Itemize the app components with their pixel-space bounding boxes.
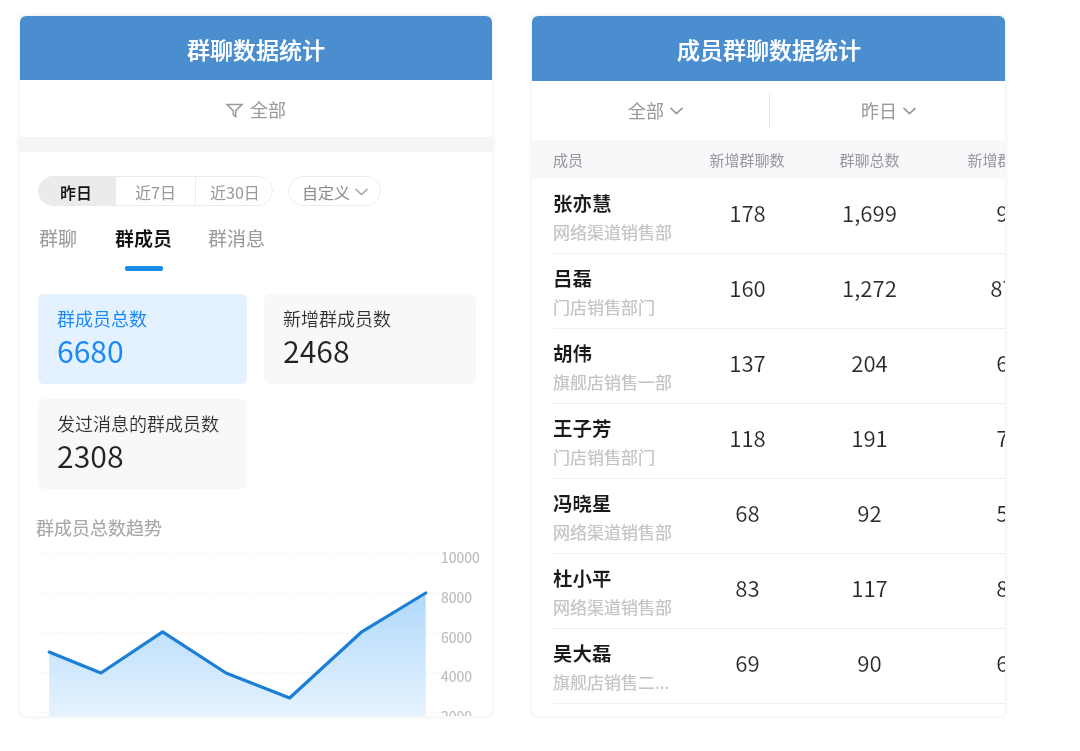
button[interactable]: 昨日 — [38, 176, 115, 206]
staticText: 160 — [729, 271, 766, 303]
button[interactable]: 吕磊 — [532, 254, 1005, 328]
staticText: 1,272 — [842, 271, 897, 303]
button[interactable]: 全部 — [20, 80, 492, 137]
staticText: 4000 — [441, 666, 473, 686]
staticText: 117 — [851, 571, 888, 603]
staticText: 870 — [990, 271, 1005, 303]
staticText: 发过消息的群成员数 — [57, 410, 219, 436]
staticText: 群消息 — [208, 224, 266, 252]
button[interactable]: 吴大磊 — [532, 629, 1005, 703]
staticText: 1,699 — [842, 196, 897, 228]
button[interactable]: 群聊 — [39, 224, 78, 271]
staticText: 旗舰店销售二... — [553, 669, 670, 694]
staticText: 204 — [851, 346, 888, 378]
staticText: 6000 — [441, 627, 473, 647]
staticText: 网络渠道销售部 — [553, 519, 672, 544]
staticText: 近7日 — [135, 180, 176, 203]
staticText: 191 — [851, 421, 888, 453]
staticText: 王子芳 — [553, 413, 612, 441]
staticText: 冯晓星 — [553, 488, 612, 516]
staticText: 成员 — [553, 149, 584, 171]
staticText: 69 — [735, 646, 760, 678]
staticText: 62 — [996, 346, 1005, 378]
button[interactable]: 群成员总数 — [38, 294, 247, 384]
staticText: 55 — [996, 496, 1005, 528]
staticText: 90 — [857, 646, 882, 678]
staticText: 群成员总数 — [57, 305, 147, 331]
staticText: 83 — [735, 571, 760, 603]
staticText: 群聊总数 — [839, 149, 900, 171]
button[interactable]: 全部 — [537, 81, 774, 140]
button[interactable]: 昨日 — [770, 81, 1005, 140]
staticText: 全部 — [250, 96, 286, 122]
staticText: 178 — [729, 196, 766, 228]
staticText: 83 — [996, 571, 1005, 603]
staticText: 118 — [729, 421, 766, 453]
staticText: 昨日 — [60, 180, 93, 203]
staticText: 137 — [729, 346, 766, 378]
staticText: 全部 — [628, 97, 664, 123]
staticText: 网络渠道销售部 — [553, 594, 672, 619]
staticText: 旗舰店销售一部 — [553, 369, 672, 394]
button[interactable]: 群消息 — [208, 224, 266, 271]
staticText: 74 — [996, 421, 1005, 453]
button[interactable]: 冯晓星 — [532, 479, 1005, 553]
staticText: 张亦慧 — [553, 188, 612, 216]
staticText: 网络渠道销售部 — [553, 219, 672, 244]
staticText: 吴大磊 — [553, 638, 612, 666]
staticText: 新增群聊数 — [709, 149, 785, 171]
button[interactable]: 杜小平 — [532, 554, 1005, 628]
staticText: 吕磊 — [553, 263, 593, 291]
staticText: 68 — [735, 496, 760, 528]
button[interactable]: 新增群成员数 — [264, 294, 476, 384]
staticText: 群聊数据统计 — [187, 32, 325, 65]
staticText: 群聊 — [39, 224, 78, 252]
staticText: 2000 — [441, 706, 473, 716]
button[interactable]: 胡伟 — [532, 329, 1005, 403]
staticText: 95 — [996, 196, 1005, 228]
button[interactable]: 发过消息的群成员数 — [38, 399, 247, 489]
staticText: 62 — [996, 646, 1005, 678]
staticText: 门店销售部门 — [553, 444, 655, 469]
button[interactable]: 近7日 — [116, 176, 195, 206]
staticText: 近30日 — [210, 180, 260, 203]
staticText: 群成员 — [115, 224, 173, 252]
button[interactable]: 张亦慧 — [532, 179, 1005, 253]
staticText: 成员群聊数据统计 — [677, 32, 861, 65]
button[interactable]: 自定义 — [288, 176, 381, 206]
button[interactable]: 群成员 — [115, 224, 173, 271]
staticText: 新增群成员数 — [283, 305, 391, 331]
staticText: 门店销售部门 — [553, 294, 655, 319]
staticText: 昨日 — [861, 97, 897, 123]
staticText: 新增群聊数 — [967, 149, 1005, 171]
staticText: 2308 — [57, 433, 124, 476]
staticText: 自定义 — [302, 180, 351, 203]
staticText: 6680 — [57, 328, 124, 371]
button[interactable]: 近30日 — [196, 176, 273, 206]
staticText: 群成员总数趋势 — [36, 514, 162, 540]
staticText: 胡伟 — [553, 338, 593, 366]
staticText: 杜小平 — [553, 563, 612, 591]
staticText: 92 — [857, 496, 882, 528]
staticText: 10000 — [441, 547, 480, 567]
staticText: 8000 — [441, 587, 473, 607]
button[interactable]: 王子芳 — [532, 404, 1005, 478]
staticText: 2468 — [283, 328, 350, 371]
